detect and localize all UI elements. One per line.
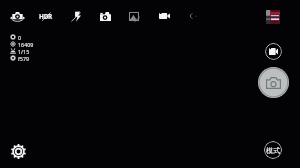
button[interactable]: Scene mode: [123, 6, 145, 26]
button[interactable]: Night mode: [180, 6, 202, 26]
button[interactable]: Gallery: [266, 10, 280, 24]
button[interactable]: 模式: [264, 141, 282, 159]
staticText: f579: [18, 55, 30, 62]
staticText: HDR: [39, 12, 53, 21]
staticText: 16409: [18, 41, 34, 48]
staticText: 模式: [266, 146, 280, 155]
staticText: 0: [18, 34, 22, 41]
button[interactable]: Settings: [9, 142, 27, 160]
staticText: 1/15: [18, 48, 30, 55]
button[interactable]: Record video: [265, 43, 282, 60]
button[interactable]: Photo mode: [94, 6, 116, 26]
button[interactable]: Switch camera: [6, 6, 28, 26]
button[interactable]: Video mode: [153, 6, 175, 26]
button[interactable]: Flash off: [65, 6, 87, 26]
button[interactable]: Take photo: [258, 67, 289, 98]
button[interactable]: HDR off: [35, 6, 57, 26]
